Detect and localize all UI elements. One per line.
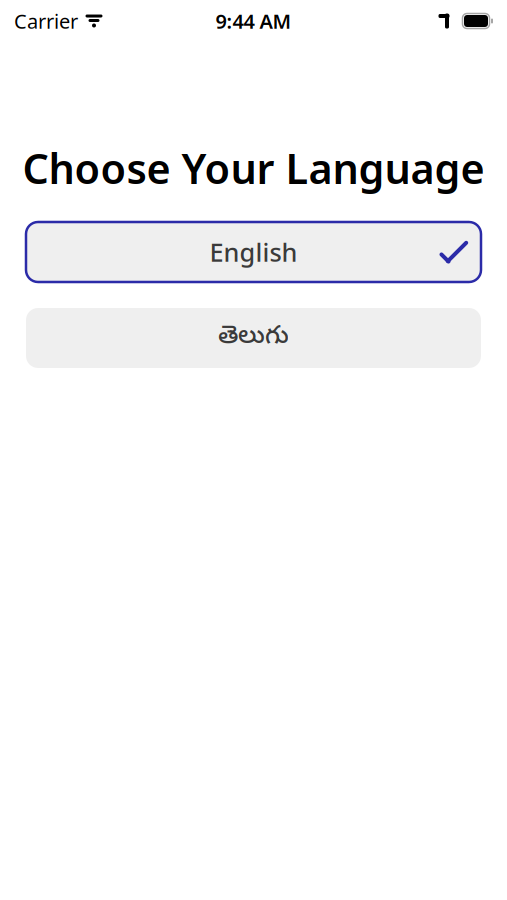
button[interactable]: తెలుగు — [26, 308, 481, 368]
staticText: Carrier — [14, 8, 78, 34]
button[interactable]: English — [26, 222, 481, 282]
staticText: తెలుగు — [218, 321, 289, 355]
staticText: English — [209, 235, 297, 269]
staticText: 9:44 AM — [215, 8, 291, 34]
staticText: Choose Your Language — [22, 141, 484, 195]
